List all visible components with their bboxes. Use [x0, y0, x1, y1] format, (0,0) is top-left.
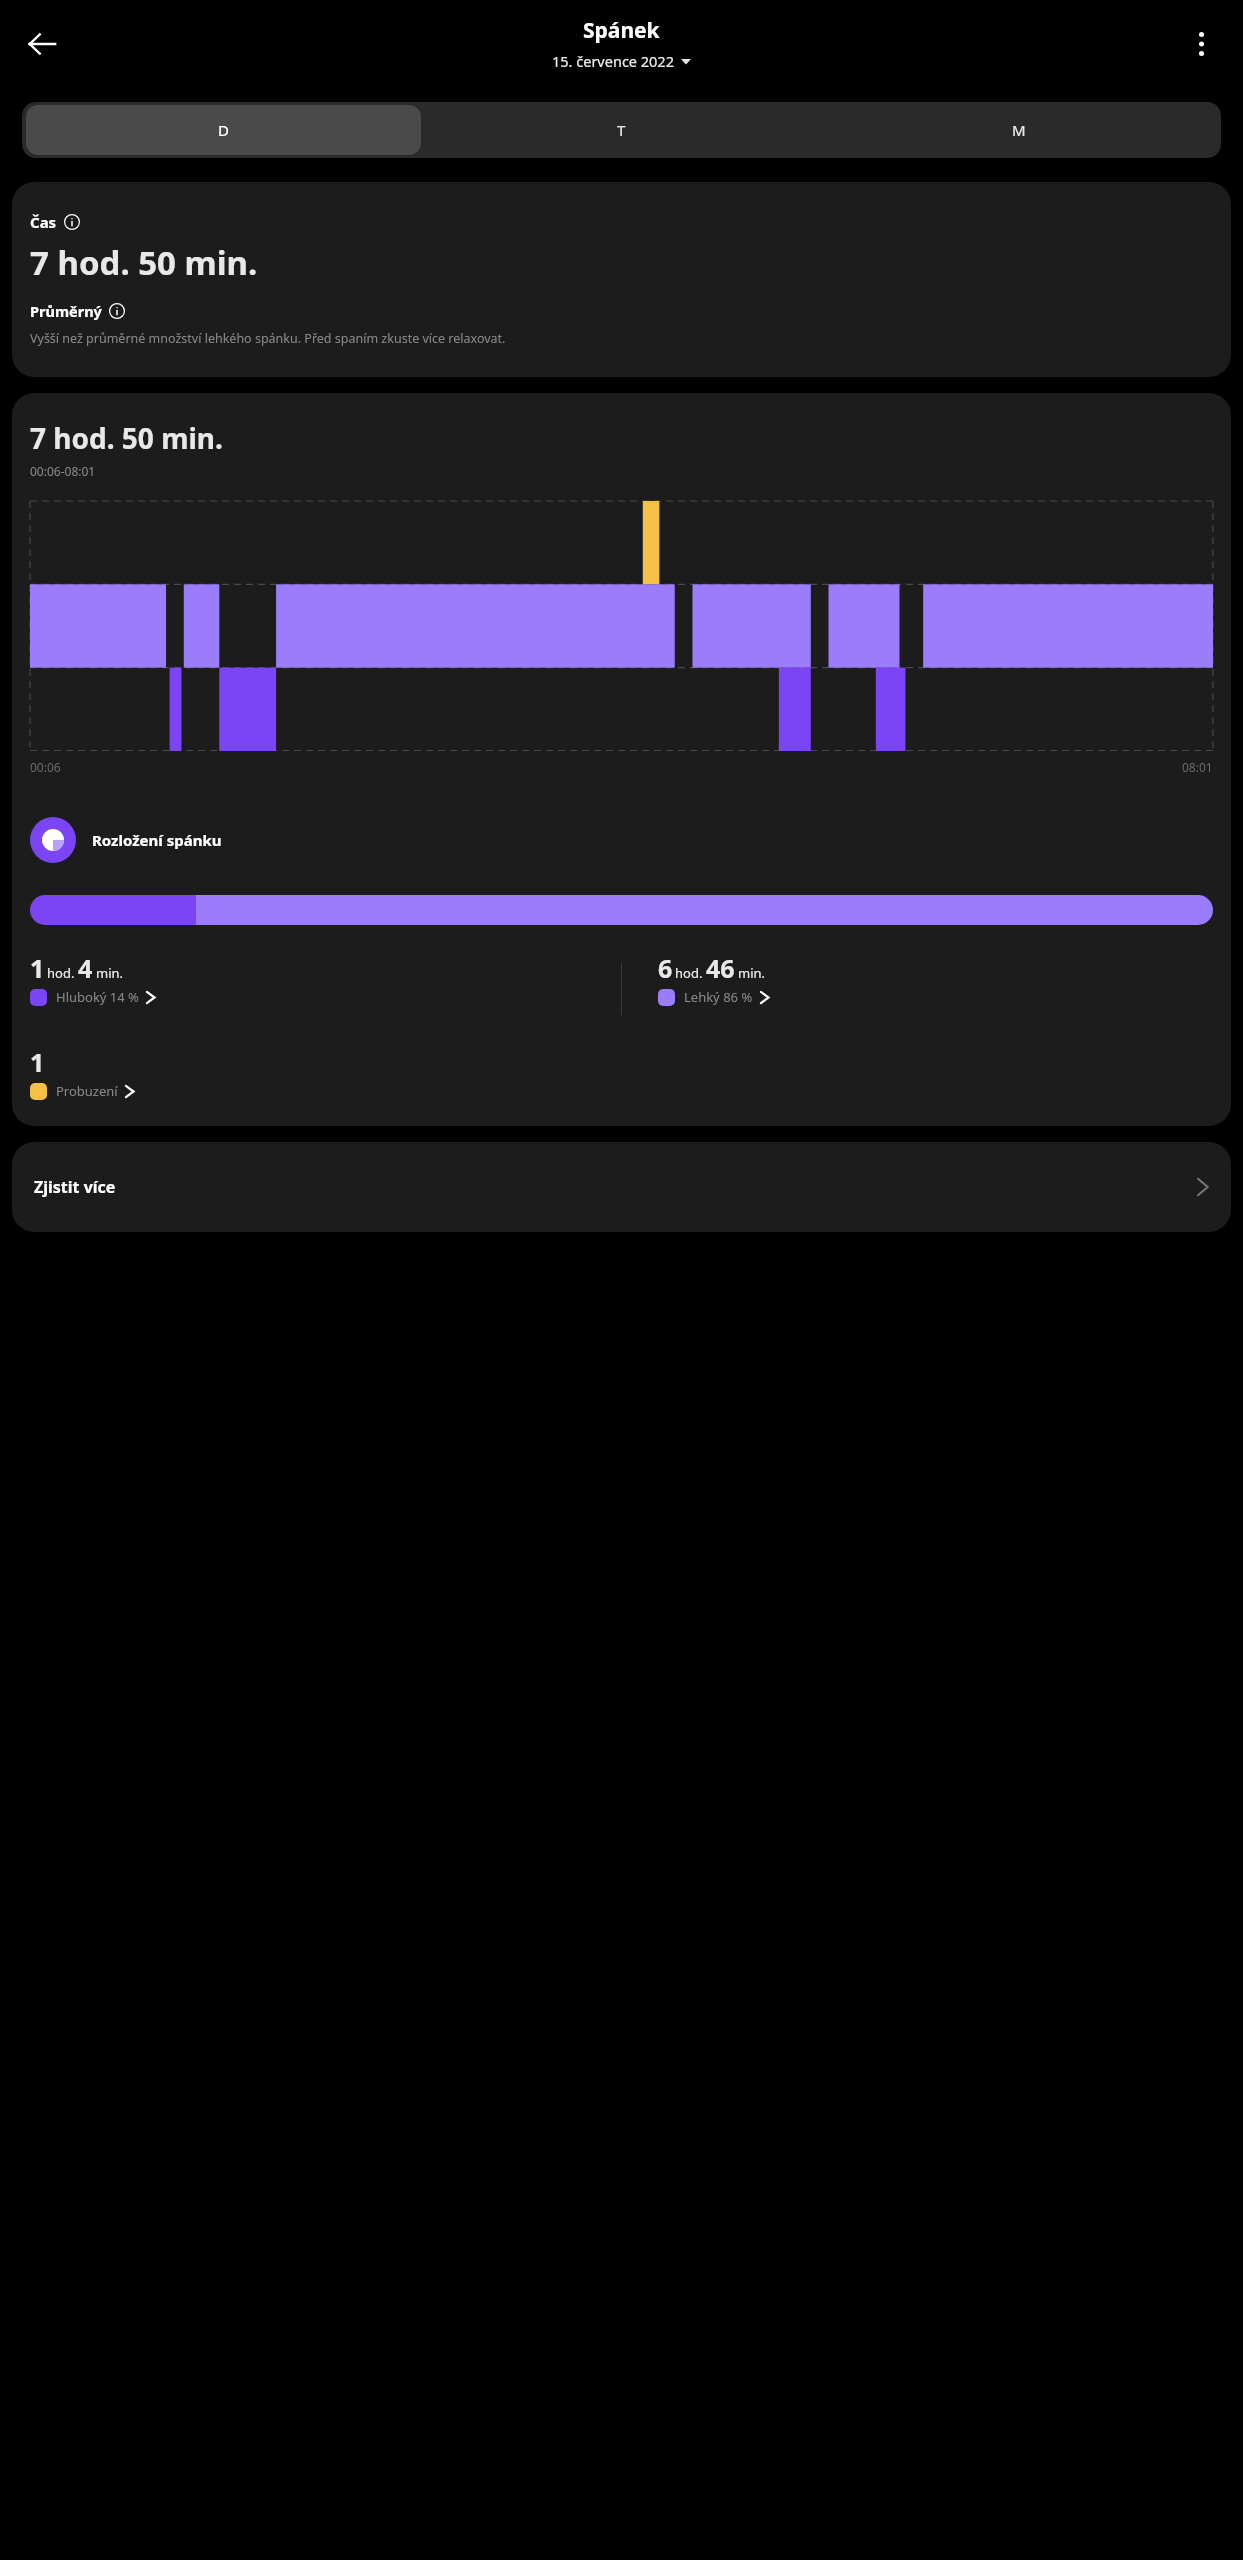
staticText: T	[617, 120, 626, 140]
staticText: 1	[30, 1045, 45, 1079]
staticText: 7 hod. 50 min.	[30, 240, 258, 285]
staticText: 6	[658, 951, 673, 985]
staticText: hod.	[47, 964, 75, 982]
button[interactable]: Back	[14, 16, 70, 72]
button[interactable]: M	[821, 105, 1217, 155]
staticText: Zjistit více	[34, 1176, 116, 1198]
staticText: 08:01	[1182, 759, 1213, 775]
staticText: 00:06-08:01	[30, 463, 96, 479]
button[interactable]: Zjistit více	[12, 1142, 1231, 1232]
staticText: 4	[78, 951, 93, 985]
button[interactable]: Rozložení spánku	[30, 817, 222, 863]
staticText: Hluboký 14 %	[56, 988, 139, 1006]
staticText: 1	[30, 951, 45, 985]
button[interactable]: Čas	[12, 182, 1231, 377]
button[interactable]: 1	[30, 951, 155, 1006]
staticText: D	[218, 120, 229, 140]
staticText: min.	[738, 964, 766, 982]
staticText: Lehký 86 %	[684, 988, 753, 1006]
staticText: 46	[706, 951, 735, 985]
staticText: Spánek	[583, 16, 660, 45]
staticText: min.	[96, 964, 124, 982]
button[interactable]: 1	[30, 1045, 134, 1100]
staticText: Rozložení spánku	[92, 830, 222, 850]
staticText: Probuzení	[56, 1082, 118, 1100]
staticText: M	[1012, 120, 1026, 140]
button[interactable]: T	[423, 105, 819, 155]
button[interactable]: 6	[658, 951, 769, 1006]
staticText: Vyšší než průměrné množství lehkého spán…	[30, 330, 506, 347]
staticText: 00:06	[30, 759, 61, 775]
button[interactable]: More options	[1173, 16, 1229, 72]
button[interactable]: 15. července 2022	[548, 49, 695, 73]
staticText: Průměrný	[30, 301, 102, 321]
button[interactable]: D	[26, 105, 421, 155]
staticText: 15. července 2022	[552, 51, 674, 71]
staticText: 7 hod. 50 min.	[30, 419, 223, 457]
staticText: Čas	[30, 212, 57, 232]
staticText: hod.	[675, 964, 703, 982]
